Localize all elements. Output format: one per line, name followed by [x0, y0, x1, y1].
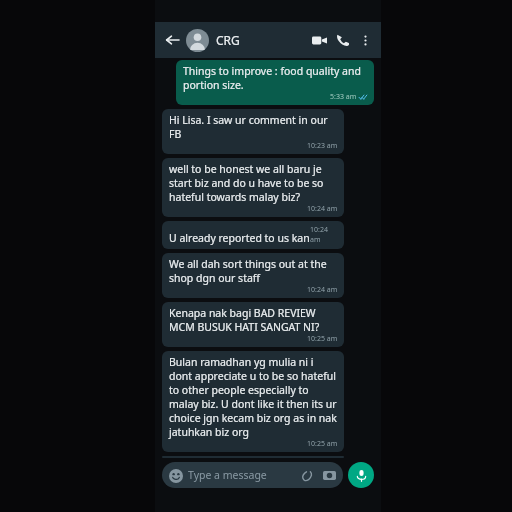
button[interactable]: Voice call [331, 28, 355, 52]
button[interactable]: We all dah sort things out at the shop d… [162, 253, 344, 298]
staticText: 10:24 am [310, 225, 338, 245]
staticText: 10:25 am [307, 334, 338, 344]
button[interactable]: well to be honest we all baru je start b… [162, 158, 344, 217]
staticText: 10:24 am [307, 285, 338, 295]
button[interactable]: Emoji [162, 462, 343, 488]
staticText: Bulan ramadhan yg mulia ni i dont apprec… [169, 355, 338, 439]
staticText: Kenapa nak bagi BAD REVIEW MCM BUSUK HAT… [169, 306, 338, 334]
button[interactable]: Camera [321, 467, 337, 483]
button[interactable]: Attach [299, 467, 315, 483]
button[interactable]: U already reported to us kan [162, 221, 344, 249]
staticText: Things to improve : food quality and por… [183, 64, 368, 92]
button[interactable]: Hi Lisa. I saw ur comment in our FB [162, 109, 344, 154]
button[interactable]: Voice message [348, 462, 374, 488]
button[interactable]: Bulan ramadhan yg mulia ni i dont apprec… [162, 351, 344, 452]
staticText: 10:23 am [307, 141, 338, 151]
staticText: 10:25 am [307, 439, 338, 449]
staticText: U already reported to us kan [169, 231, 310, 245]
button[interactable]: Video call [307, 28, 331, 52]
button[interactable]: Kenapa nak bagi BAD REVIEW MCM BUSUK HAT… [162, 302, 344, 347]
staticText: 5:33 am [330, 92, 357, 102]
button[interactable]: Emoji [168, 468, 183, 483]
staticText: Hi Lisa. I saw ur comment in our FB [169, 113, 338, 141]
staticText: We all dah sort things out at the shop d… [169, 257, 338, 285]
staticText: 10:24 am [307, 204, 338, 214]
button[interactable]: Contact photo [186, 29, 209, 52]
button[interactable]: More options [355, 30, 375, 50]
staticText: CRG [216, 32, 240, 48]
staticText: Type a message [188, 468, 267, 482]
staticText: well to be honest we all baru je start b… [169, 162, 338, 204]
button[interactable]: Back [161, 29, 183, 51]
button[interactable]: Things to improve : food quality and por… [176, 60, 374, 105]
